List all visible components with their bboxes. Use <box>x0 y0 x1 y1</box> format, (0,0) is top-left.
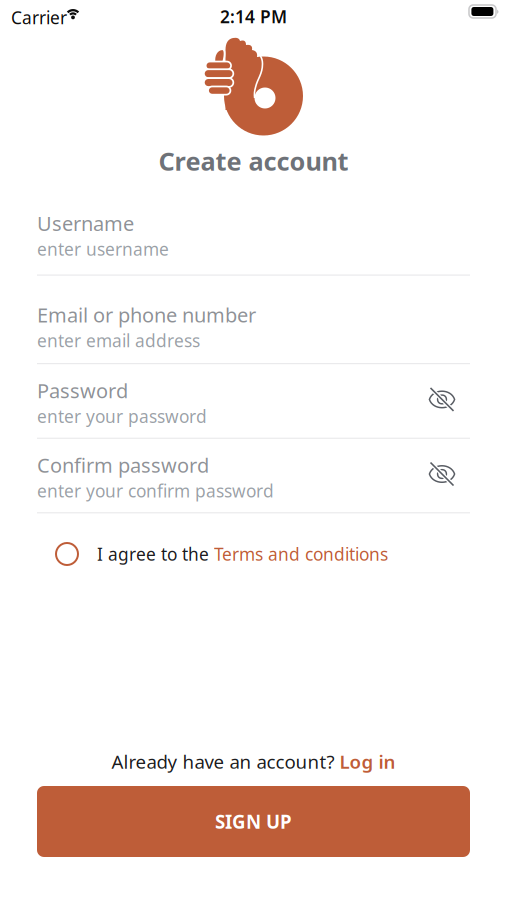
staticText: enter username <box>37 238 169 261</box>
staticText: Email or phone number <box>37 302 256 328</box>
button[interactable]: I agree to the <box>56 537 506 571</box>
staticText: Log in <box>339 749 395 774</box>
staticText: Already have an account? <box>111 749 339 774</box>
staticText: enter your confirm password <box>37 479 274 502</box>
staticText: Terms and conditions <box>214 542 388 565</box>
button[interactable]: Show password <box>428 390 470 414</box>
staticText: Carrier <box>11 6 67 29</box>
button[interactable]: SIGN UP <box>37 786 470 857</box>
staticText: Username <box>37 210 134 237</box>
staticText: SIGN UP <box>215 809 292 834</box>
staticText: enter email address <box>37 329 200 352</box>
staticText: Create account <box>158 144 348 178</box>
staticText: Confirm password <box>37 452 209 478</box>
button[interactable]: Log in <box>339 749 395 774</box>
staticText: 2:14 PM <box>220 5 287 28</box>
button[interactable]: Show password <box>428 465 470 489</box>
staticText: Password <box>37 377 128 404</box>
staticText: enter your password <box>37 405 207 428</box>
staticText: I agree to the <box>97 542 214 565</box>
